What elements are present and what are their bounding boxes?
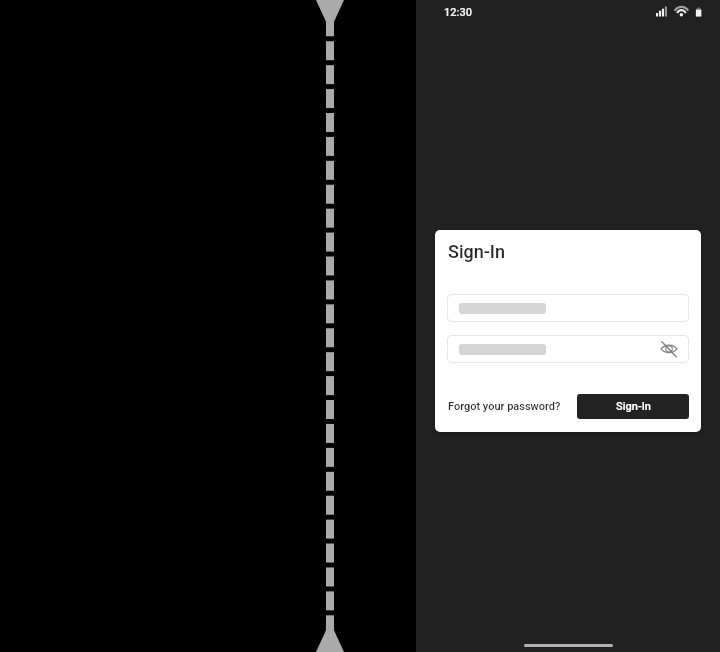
staticText: Sign-In <box>616 400 651 413</box>
button[interactable]: Sign-In <box>577 394 689 419</box>
staticText: 12:30 <box>444 6 472 19</box>
button[interactable] <box>447 294 689 322</box>
other: Home <box>524 644 613 647</box>
button[interactable]: Show password <box>447 335 689 363</box>
button[interactable]: Show password <box>661 341 677 357</box>
staticText: Forgot your password? <box>448 400 561 413</box>
button[interactable]: Forgot your password? <box>448 394 561 419</box>
staticText: Sign-In <box>448 241 505 262</box>
